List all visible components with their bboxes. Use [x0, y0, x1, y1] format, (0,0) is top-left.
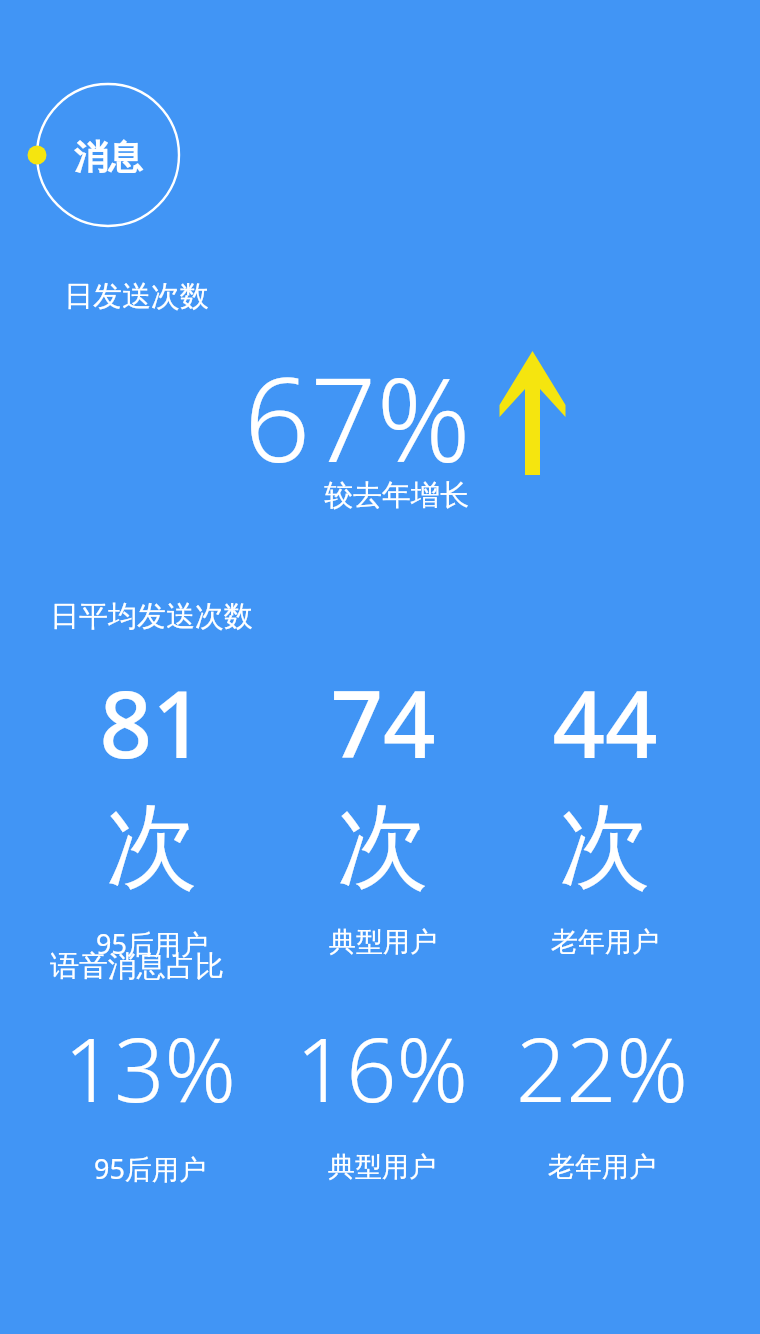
staticText: 74次	[293, 660, 473, 905]
other: 增长	[495, 351, 567, 475]
staticText: 消息	[74, 136, 142, 179]
staticText: 44次	[515, 660, 695, 905]
button[interactable]: 44次	[515, 660, 695, 959]
staticText: 13%	[60, 1008, 240, 1128]
staticText: 95后用户	[62, 925, 242, 962]
staticText: 日发送次数	[64, 278, 209, 315]
button[interactable]: 74次	[293, 660, 473, 959]
staticText: 日平均发送次数	[50, 598, 253, 635]
staticText: 语音消息占比	[50, 948, 224, 985]
button[interactable]: 消息	[20, 67, 204, 245]
staticText: 典型用户	[293, 925, 473, 959]
staticText: 老年用户	[512, 1150, 692, 1184]
button[interactable]: 13%	[60, 1008, 240, 1187]
staticText: 81次	[62, 660, 242, 905]
staticText: 16%	[292, 1008, 472, 1128]
button[interactable]: 16%	[292, 1008, 472, 1184]
staticText: 22%	[512, 1008, 692, 1128]
staticText: 典型用户	[292, 1150, 472, 1184]
button[interactable]: 67%	[244, 338, 471, 496]
staticText: 95后用户	[60, 1150, 240, 1187]
button[interactable]: 81次	[62, 660, 242, 962]
button[interactable]: 22%	[512, 1008, 692, 1184]
staticText: 较去年增长	[324, 477, 469, 514]
staticText: 老年用户	[515, 925, 695, 959]
